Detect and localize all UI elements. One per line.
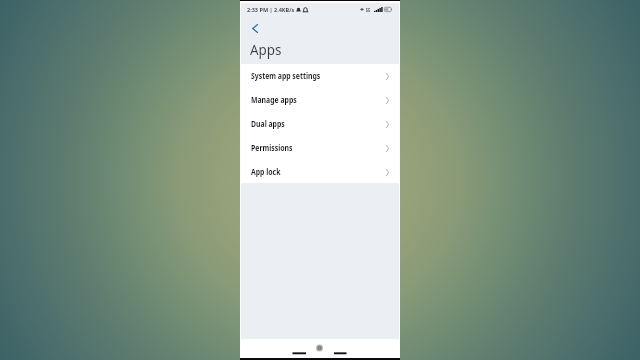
button[interactable]: Manage apps (240, 88, 400, 112)
staticText: Apps (250, 40, 282, 59)
button[interactable]: App lock (240, 160, 400, 184)
button[interactable]: Dual apps (240, 112, 400, 136)
staticText: System app settings (251, 70, 321, 81)
staticText: App lock (251, 166, 280, 177)
staticText: Dual apps (251, 118, 285, 129)
staticText: 2:33 PM | 2.4KB/s (247, 6, 295, 14)
button[interactable]: System app settings (240, 64, 400, 88)
staticText: Manage apps (251, 94, 297, 105)
button[interactable]: Permissions (240, 136, 400, 160)
staticText: Permissions (251, 142, 293, 153)
button[interactable]: Back (246, 20, 264, 37)
